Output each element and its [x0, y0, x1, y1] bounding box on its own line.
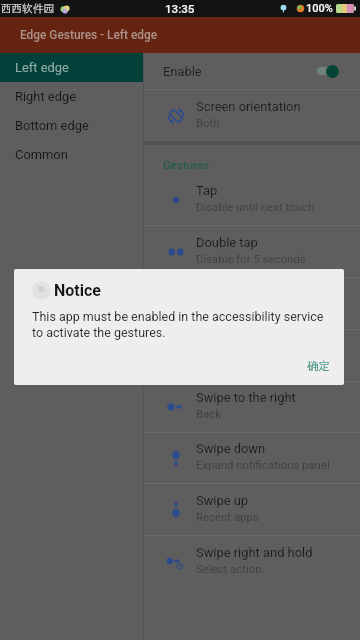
- staticText: Gestures: [163, 158, 210, 171]
- staticText: 西西软件园: [1, 2, 54, 15]
- button[interactable]: Left edge: [0, 53, 143, 82]
- button[interactable]: Swipe to the right: [144, 382, 360, 432]
- staticText: Enable: [163, 64, 202, 79]
- button[interactable]: Enable: [144, 53, 360, 89]
- staticText: Notice: [54, 281, 101, 300]
- button[interactable]: Bottom edge: [0, 111, 143, 140]
- button[interactable]: Swipe up: [144, 484, 360, 535]
- staticText: Swipe up: [196, 493, 249, 508]
- button[interactable]: Tap and hold: [144, 278, 360, 329]
- staticText: Screen orientation: [196, 99, 301, 114]
- staticText: Select action.: [196, 304, 265, 317]
- staticText: 确定: [307, 359, 330, 373]
- staticText: Swipe right and hold: [196, 545, 313, 560]
- other: Enable toggle: [317, 64, 339, 78]
- staticText: Swipe to the right: [196, 390, 296, 405]
- staticText: Recent apps: [196, 510, 259, 523]
- staticText: 100%: [306, 2, 333, 15]
- staticText: Double tap: [196, 235, 258, 250]
- button[interactable]: Swipe down: [144, 433, 360, 483]
- staticText: 13:35: [165, 2, 195, 16]
- staticText: Disable for 5 seconds: [196, 252, 306, 265]
- button[interactable]: 确定: [293, 354, 344, 378]
- staticText: Both: [196, 116, 220, 129]
- button[interactable]: Common: [0, 140, 143, 169]
- staticText: Disable until next touch: [196, 200, 315, 213]
- staticText: Right edge: [15, 89, 77, 104]
- staticText: Swipe down: [196, 441, 266, 456]
- staticText: Select action.: [196, 562, 265, 575]
- staticText: Back: [196, 407, 222, 420]
- button[interactable]: Swipe right and hold: [144, 536, 360, 587]
- button[interactable]: Right edge: [0, 82, 143, 111]
- staticText: This app must be enabled in the accessib…: [32, 309, 328, 341]
- staticText: Common: [15, 147, 68, 162]
- staticText: Expand notifications panel: [196, 458, 330, 471]
- button[interactable]: Swipe to the left: [144, 330, 360, 381]
- button[interactable]: Tap: [144, 175, 360, 225]
- button[interactable]: Double tap: [144, 226, 360, 277]
- button[interactable]: Screen orientation: [144, 90, 360, 141]
- staticText: Bottom edge: [15, 118, 89, 133]
- staticText: Left edge: [15, 60, 69, 75]
- staticText: Tap: [196, 183, 218, 198]
- staticText: Edge Gestures - Left edge: [20, 28, 158, 42]
